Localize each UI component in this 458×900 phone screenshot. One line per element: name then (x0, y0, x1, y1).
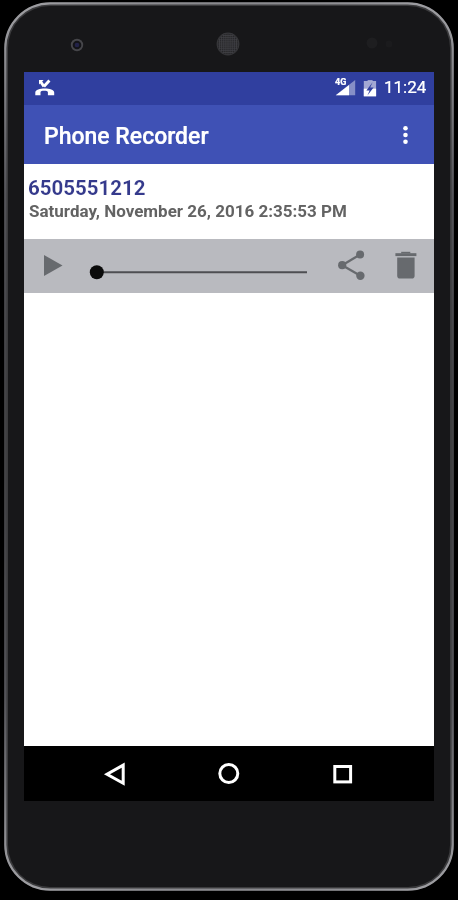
button[interactable]: More options (381, 105, 429, 164)
staticText: 11:24 (384, 77, 427, 97)
button[interactable]: Play (29, 239, 77, 293)
staticText: Phone Recorder (44, 123, 209, 150)
button[interactable]: Back (79, 746, 151, 801)
button[interactable]: Recent apps (307, 746, 379, 801)
button[interactable]: Share (328, 239, 376, 293)
staticText: 4G (335, 77, 347, 88)
button[interactable]: Home (193, 746, 265, 801)
staticText: 6505551212 (28, 176, 146, 200)
button[interactable]: Delete (382, 239, 430, 293)
button[interactable]: Seek position (80, 239, 328, 293)
button[interactable]: 6505551212 (24, 164, 434, 239)
staticText: Saturday, November 26, 2016 2:35:53 PM (29, 201, 347, 221)
